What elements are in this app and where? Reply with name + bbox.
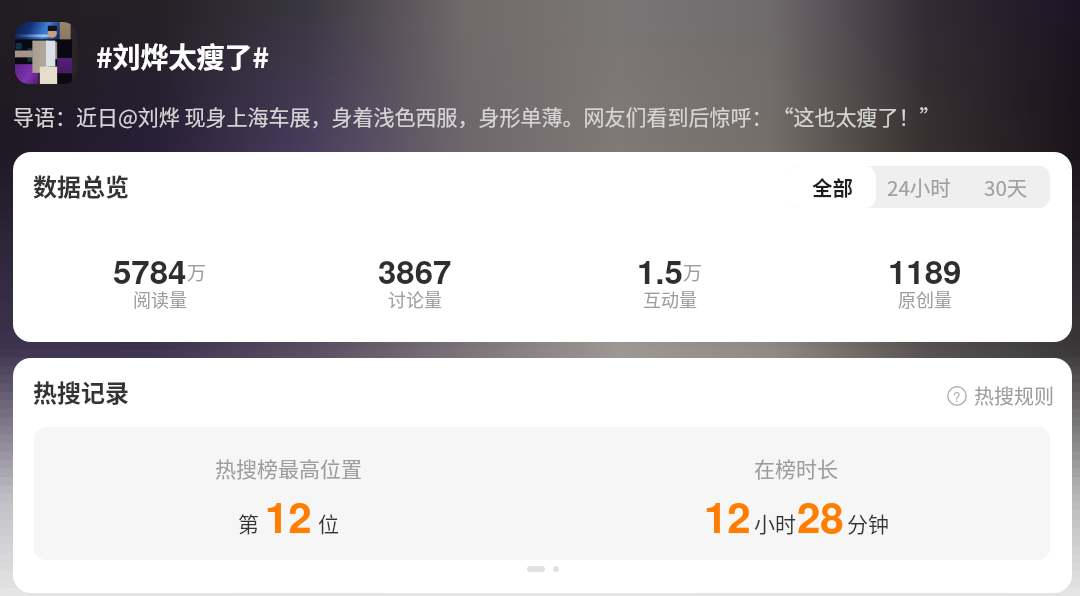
- staticText: 在榜时长: [754, 453, 838, 483]
- staticText: 1189: [888, 247, 962, 294]
- staticText: 热搜榜最高位置: [215, 453, 362, 483]
- staticText: 12: [265, 486, 312, 546]
- staticText: 万: [187, 258, 207, 286]
- staticText: 热搜记录: [33, 374, 129, 409]
- button[interactable]: 24小时: [876, 166, 962, 208]
- staticText: 阅读量: [133, 286, 187, 312]
- button[interactable]: 30天: [962, 166, 1050, 208]
- staticText: 讨论量: [388, 286, 442, 312]
- staticText: #刘烨太瘦了#: [96, 36, 270, 77]
- staticText: 24小时: [887, 172, 951, 202]
- staticText: 1.5: [637, 247, 683, 294]
- staticText: 原创量: [898, 286, 952, 312]
- staticText: 3867: [378, 247, 452, 294]
- staticText: 12: [704, 486, 751, 546]
- staticText: 全部: [812, 172, 853, 202]
- other: 热搜规则说明: [947, 386, 967, 406]
- button[interactable]: 热搜规则说明: [947, 381, 1054, 410]
- staticText: 第: [238, 508, 259, 538]
- staticText: 万: [683, 258, 703, 286]
- staticText: 数据总览: [33, 168, 129, 203]
- staticText: 小时: [754, 508, 796, 538]
- staticText: 位: [318, 508, 339, 538]
- staticText: 分钟: [847, 508, 889, 538]
- staticText: 热搜规则: [974, 381, 1054, 410]
- staticText: 5784: [113, 247, 187, 294]
- staticText: 30天: [984, 172, 1028, 202]
- staticText: 导语：近日@刘烨 现身上海车展，身着浅色西服，身形单薄。网友们看到后惊呼：“这也…: [13, 101, 941, 131]
- staticText: 互动量: [643, 286, 697, 312]
- staticText: 28: [797, 486, 844, 546]
- button[interactable]: 全部: [788, 166, 876, 208]
- staticText: ?: [953, 387, 961, 406]
